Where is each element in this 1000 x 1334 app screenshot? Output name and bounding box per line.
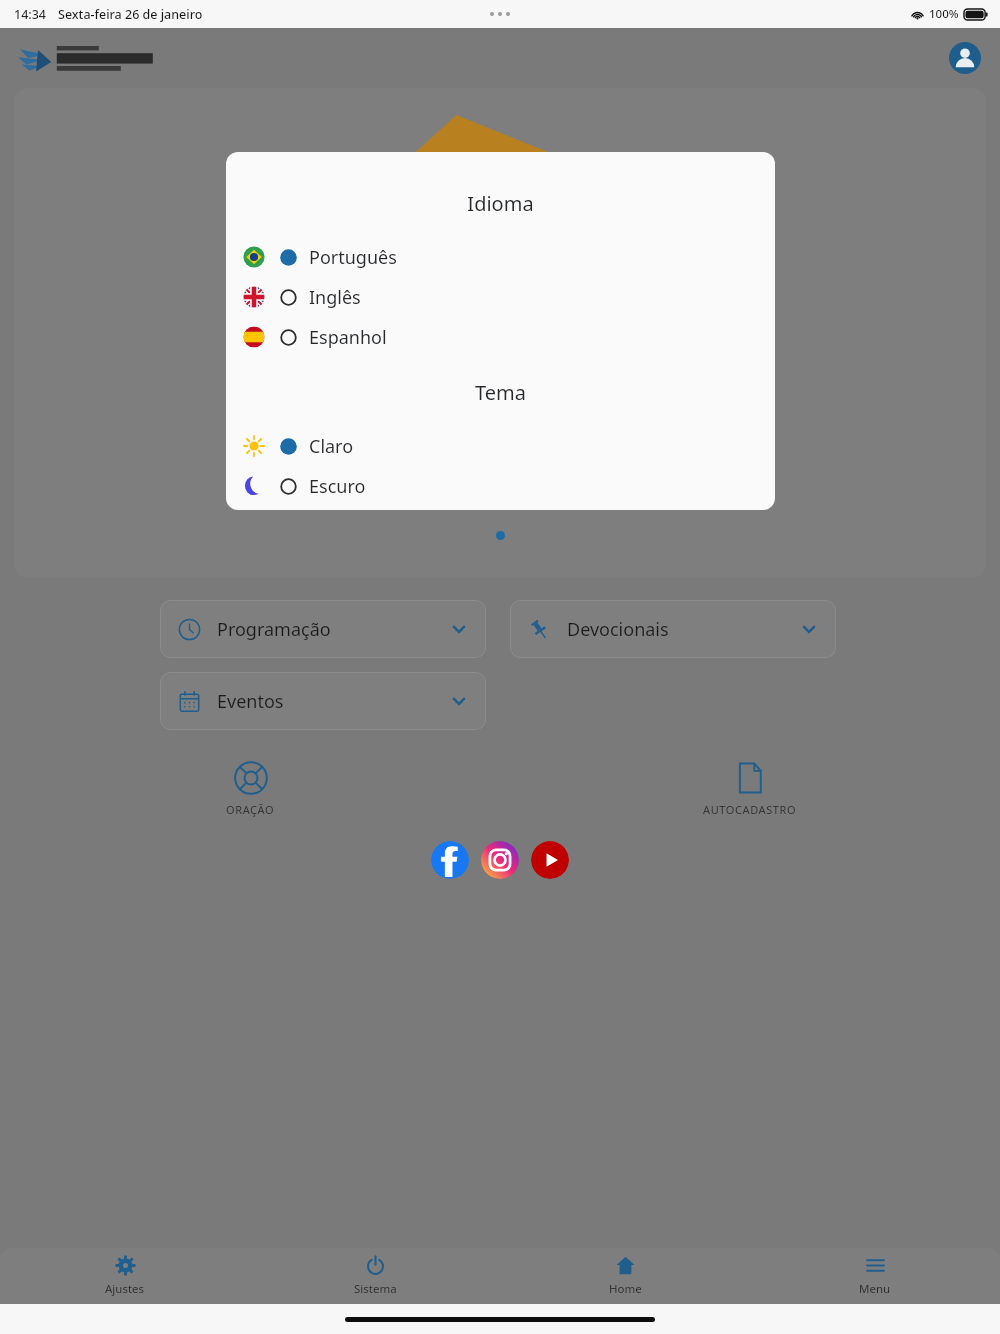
staticText: 1 C O R Í N T I O S 2 : 4 B: [14, 478, 986, 504]
button[interactable]: YouTube: [531, 841, 569, 879]
staticText: Eventos: [217, 689, 284, 714]
staticText: Tema: [226, 379, 775, 406]
button[interactable]: Espanhol: [226, 317, 775, 357]
button[interactable]: Escuro: [226, 466, 775, 506]
button[interactable]: Eventos: [160, 672, 486, 730]
staticText: Programação: [217, 617, 331, 642]
staticText: Sexta-feira 26 de janeiro: [58, 6, 203, 23]
button[interactable]: Sistema: [250, 1248, 500, 1304]
staticText: Home: [609, 1281, 642, 1297]
button[interactable]: Claro: [226, 426, 775, 466]
staticText: Espanhol: [309, 325, 387, 350]
button[interactable]: Devocionais: [510, 600, 836, 658]
button[interactable]: Facebook: [431, 841, 469, 879]
staticText: Sistema: [354, 1281, 397, 1297]
staticText: AUTOCADASTRO: [703, 802, 797, 817]
staticText: Claro: [309, 434, 354, 459]
button[interactable]: Programação: [160, 600, 486, 658]
button[interactable]: Inglês: [226, 277, 775, 317]
button[interactable]: Português: [226, 237, 775, 277]
staticText: Inglês: [309, 285, 361, 310]
staticText: Idioma: [226, 190, 775, 217]
button[interactable]: Conta: [947, 40, 983, 76]
button[interactable]: 1 C O R Í N T I O S 2 : 4 B: [14, 88, 986, 578]
staticText: ORAÇÃO: [226, 802, 275, 817]
button[interactable]: Ajustes: [0, 1248, 250, 1304]
button[interactable]: Instagram: [481, 841, 519, 879]
staticText: Ajustes: [105, 1281, 145, 1297]
button[interactable]: AUTOCADASTRO: [697, 754, 803, 823]
staticText: Português: [309, 245, 397, 270]
staticText: 14:34: [14, 6, 47, 23]
staticText: Escuro: [309, 474, 366, 499]
staticText: Menu: [859, 1281, 891, 1297]
button[interactable]: Home: [500, 1248, 750, 1304]
staticText: Devocionais: [567, 617, 669, 642]
button[interactable]: Menu: [750, 1248, 1000, 1304]
staticText: 100%: [929, 6, 959, 22]
button[interactable]: ORAÇÃO: [220, 754, 281, 823]
